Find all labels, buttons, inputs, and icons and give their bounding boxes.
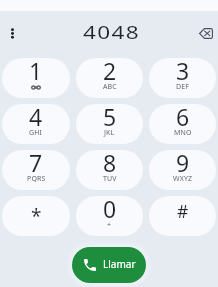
button[interactable]: Llamar <box>72 247 146 283</box>
button[interactable]: Backspace <box>196 24 215 43</box>
button[interactable]: More options <box>4 25 21 42</box>
staticText: 1 <box>29 58 43 86</box>
button[interactable]: * <box>2 196 70 236</box>
staticText: WXYZ <box>173 174 193 184</box>
staticText: Llamar <box>103 257 136 271</box>
staticText: MNO <box>174 128 192 138</box>
staticText: 9 <box>176 150 190 178</box>
staticText: GHI <box>29 128 43 138</box>
button[interactable]: 7 <box>2 150 70 190</box>
staticText: 7 <box>29 150 43 178</box>
button[interactable]: 3 <box>149 58 216 98</box>
button[interactable]: # <box>149 196 216 236</box>
staticText: 3 <box>176 58 190 86</box>
staticText: 8 <box>103 150 117 178</box>
staticText: ABC <box>103 82 117 92</box>
staticText: TUV <box>103 174 117 184</box>
staticText: 0 <box>103 196 117 224</box>
button[interactable]: 8 <box>76 150 143 190</box>
button[interactable]: 0 <box>76 196 143 236</box>
staticText: 5 <box>103 104 117 132</box>
staticText: 4048 <box>83 19 140 44</box>
staticText: 6 <box>176 104 190 132</box>
staticText: JKL <box>104 128 115 138</box>
button[interactable]: 9 <box>149 150 216 190</box>
button[interactable]: 4 <box>2 104 70 144</box>
staticText: 2 <box>103 58 117 86</box>
staticText: 4 <box>29 104 43 132</box>
staticText: + <box>107 220 112 230</box>
staticText: DEF <box>176 82 190 92</box>
button[interactable]: 5 <box>76 104 143 144</box>
button[interactable]: 2 <box>76 58 143 98</box>
button[interactable]: 1 <box>2 58 70 98</box>
staticText: # <box>177 199 189 223</box>
button[interactable]: 6 <box>149 104 216 144</box>
staticText: PQRS <box>27 174 46 184</box>
staticText: * <box>31 203 42 229</box>
